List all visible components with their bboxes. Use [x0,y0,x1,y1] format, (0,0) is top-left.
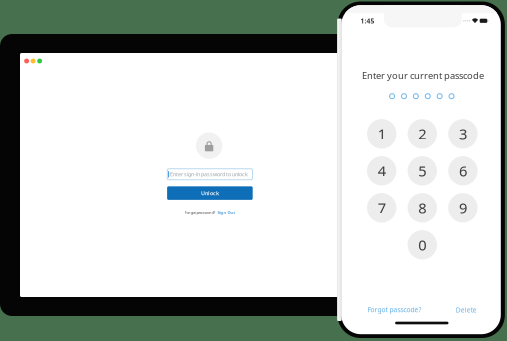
button[interactable]: 3 [448,119,478,148]
staticText: 0 [418,235,426,255]
staticText: Enter sign-in password to unlock [170,171,248,178]
button[interactable]: 1 [367,119,396,148]
button[interactable]: Unlock [167,186,253,200]
button[interactable]: Sign Out [217,210,235,215]
staticText: Forgot password? [185,210,216,215]
button[interactable]: 7 [367,193,396,222]
staticText: 7 [378,198,386,218]
staticText: 1:45 [360,16,374,25]
staticText: Unlock [201,190,219,197]
staticText: 5 [418,161,426,181]
staticText: 2 [418,124,426,144]
staticText: 9 [459,198,467,218]
staticText: Enter your current passcode [362,69,484,82]
staticText: 6 [459,161,467,181]
button[interactable]: 8 [408,193,437,222]
button[interactable]: Forgot passcode? [365,302,425,317]
button[interactable]: 9 [448,193,478,222]
staticText: Sign Out [217,210,235,215]
button[interactable]: 4 [367,156,396,185]
staticText: 3 [459,124,467,144]
button[interactable]: 0 [408,230,437,259]
staticText: 4 [378,161,386,181]
staticText: Forgot passcode? [368,305,422,314]
staticText: 1 [378,124,386,144]
button[interactable]: 6 [448,156,478,185]
staticText: 8 [418,198,426,218]
button[interactable]: Delete [453,302,480,317]
staticText: Delete [456,305,477,314]
button[interactable]: 2 [408,119,437,148]
button[interactable]: 5 [408,156,437,185]
